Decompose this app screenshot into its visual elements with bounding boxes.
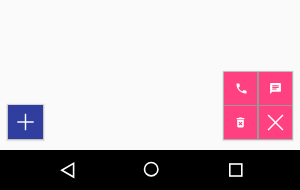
button[interactable]: Home bbox=[131, 150, 171, 190]
button[interactable]: Call bbox=[224, 72, 257, 105]
button[interactable]: Add bbox=[8, 105, 43, 139]
button[interactable]: Recents bbox=[216, 150, 256, 190]
button[interactable]: Message bbox=[259, 72, 292, 105]
button[interactable]: Close bbox=[259, 106, 292, 139]
button[interactable]: Delete bbox=[224, 106, 257, 139]
button[interactable]: Back bbox=[47, 150, 87, 190]
